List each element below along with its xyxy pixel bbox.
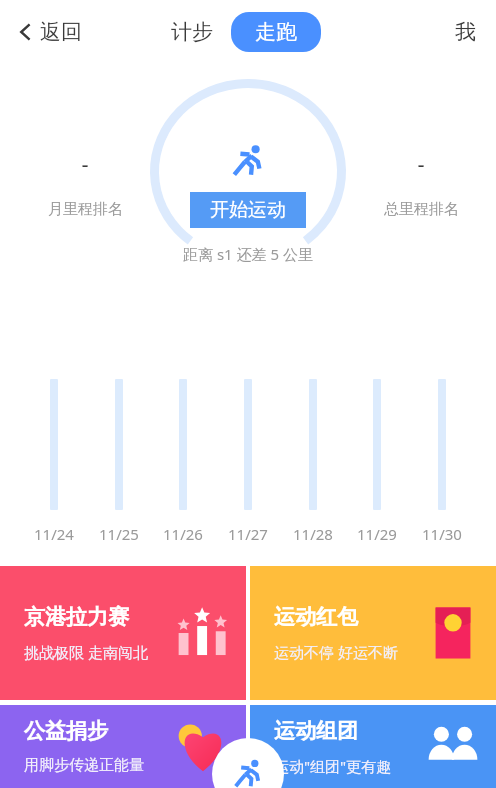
- staticText: -: [417, 148, 425, 178]
- button[interactable]: 返回: [10, 13, 88, 51]
- staticText: 计步: [171, 19, 213, 45]
- staticText: 走跑: [255, 19, 297, 45]
- staticText: 京港拉力赛: [24, 604, 129, 630]
- button[interactable]: 开始运动: [190, 192, 306, 228]
- staticText: 月里程排名: [48, 200, 123, 219]
- staticText: 我: [455, 19, 476, 45]
- staticText: 总里程排名: [384, 200, 459, 219]
- staticText: 开始运动: [210, 198, 286, 222]
- staticText: 运动红包: [274, 604, 358, 630]
- button[interactable]: 京港拉力赛: [0, 566, 246, 700]
- staticText: 挑战极限 走南闯北: [24, 642, 148, 662]
- staticText: 运动不停 好运不断: [274, 642, 398, 662]
- staticText: 用脚步传递正能量: [24, 756, 144, 775]
- button[interactable]: -: [356, 148, 486, 219]
- staticText: 11/30: [422, 524, 462, 544]
- button[interactable]: 运动组团: [250, 705, 496, 788]
- staticText: 11/27: [228, 524, 268, 544]
- staticText: 运动"组团"更有趣: [274, 756, 392, 776]
- button[interactable]: 走跑: [231, 12, 321, 52]
- staticText: 11/26: [163, 524, 203, 544]
- button[interactable]: 我: [447, 13, 484, 51]
- staticText: 返回: [40, 19, 82, 45]
- staticText: 运动组团: [274, 718, 358, 744]
- staticText: 11/29: [357, 524, 397, 544]
- staticText: 11/25: [99, 524, 139, 544]
- staticText: 11/24: [34, 524, 74, 544]
- staticText: 11/28: [293, 524, 333, 544]
- staticText: 公益捐步: [24, 718, 108, 744]
- button[interactable]: 运动红包: [250, 566, 496, 700]
- staticText: 距离 s1 还差 5 公里: [183, 244, 313, 264]
- button[interactable]: 计步: [163, 13, 221, 51]
- button[interactable]: -: [20, 148, 150, 219]
- button[interactable]: 公益捐步: [0, 705, 246, 788]
- button[interactable]: 开始跑步: [212, 738, 284, 788]
- staticText: -: [81, 148, 89, 178]
